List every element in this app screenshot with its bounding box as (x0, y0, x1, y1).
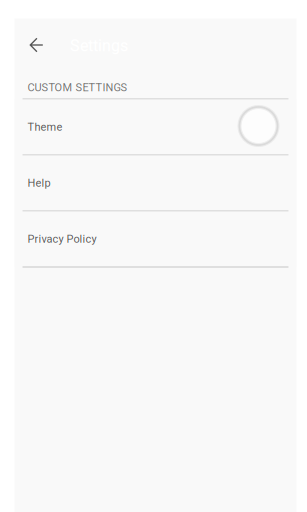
button[interactable]: Theme (14, 99, 296, 154)
staticText: Help (27, 176, 50, 189)
button[interactable]: Privacy Policy (14, 211, 296, 266)
staticText: Privacy Policy (27, 232, 96, 245)
staticText: CUSTOM SETTINGS (27, 81, 127, 94)
button[interactable]: Help (14, 155, 296, 210)
button[interactable]: Back (21, 30, 51, 60)
staticText: Theme (27, 120, 62, 133)
